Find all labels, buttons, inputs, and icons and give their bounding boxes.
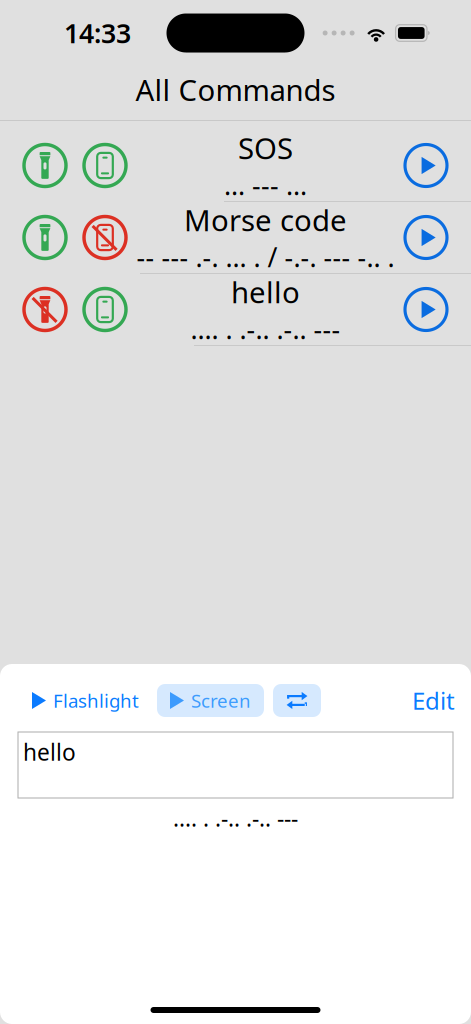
staticText: .... . .-.. .-.. ---	[190, 311, 340, 347]
button[interactable]: Flashlight	[24, 684, 147, 717]
staticText: .... . .-.. .-.. ---	[173, 803, 298, 833]
staticText: Flashlight	[53, 688, 139, 713]
staticText: hello	[231, 272, 300, 311]
staticText: All Commands	[135, 70, 335, 109]
staticText: Edit	[412, 685, 455, 716]
staticText: hello	[23, 737, 76, 767]
staticText: 14:33	[64, 15, 131, 51]
button[interactable]: Morse code	[0, 202, 471, 274]
staticText: SOS	[238, 128, 293, 167]
button[interactable]: Edit	[412, 684, 455, 717]
button[interactable]: hello	[0, 274, 471, 346]
staticText: ... --- ...	[224, 167, 307, 203]
button[interactable]: Swap flashlight and screen	[273, 684, 321, 717]
button[interactable]: SOS	[0, 130, 471, 202]
staticText: Morse code	[184, 200, 347, 239]
staticText: -- --- .-. ... . / -.-. --- -.. .	[136, 239, 394, 275]
button[interactable]: Screen	[157, 684, 264, 717]
staticText: Screen	[191, 688, 251, 713]
